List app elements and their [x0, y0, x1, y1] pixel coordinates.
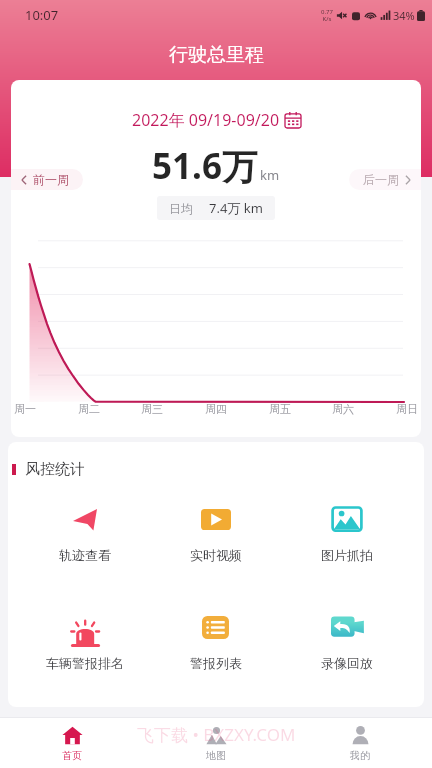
button[interactable]: 前一周: [11, 169, 83, 190]
staticText: 10:07: [25, 6, 59, 24]
staticText: 录像回放: [321, 655, 373, 671]
button[interactable]: 2022年 09/19-09/20: [126, 107, 307, 133]
staticText: 2022年 09/19-09/20: [132, 109, 280, 131]
staticText: 日均: [169, 201, 193, 216]
staticText: 周四: [205, 402, 227, 416]
staticText: 周六: [332, 402, 354, 416]
staticText: 图片抓拍: [321, 547, 373, 563]
staticText: 周日: [396, 402, 418, 416]
staticText: 周一: [14, 402, 36, 416]
staticText: 前一周: [33, 172, 69, 187]
staticText: 行驶总里程: [169, 43, 264, 67]
staticText: 车辆警报排名: [46, 655, 124, 671]
staticText: 首页: [62, 749, 82, 762]
staticText: 7.4万 km: [209, 199, 263, 217]
button[interactable]: 后一周: [349, 169, 421, 190]
staticText: 周三: [141, 402, 163, 416]
button[interactable]: 车辆警报排名: [20, 609, 150, 671]
staticText: 地图: [206, 749, 226, 762]
staticText: 实时视频: [190, 547, 242, 563]
button[interactable]: 警报列表: [150, 609, 281, 671]
staticText: km: [260, 166, 280, 184]
staticText: 我的: [350, 749, 370, 762]
button[interactable]: 录像回放: [281, 609, 412, 671]
staticText: 34%: [393, 8, 415, 23]
button[interactable]: 轨迹查看: [20, 503, 150, 563]
staticText: 51.6万: [152, 142, 257, 190]
staticText: 警报列表: [190, 655, 242, 671]
staticText: 周五: [269, 402, 291, 416]
staticText: 周二: [78, 402, 100, 416]
button[interactable]: Home: [0, 725, 144, 762]
staticText: 飞下载 • BXZXY.COM: [137, 723, 296, 746]
staticText: 轨迹查看: [59, 547, 111, 563]
button[interactable]: 图片抓拍: [281, 503, 412, 563]
button[interactable]: 实时视频: [150, 503, 281, 563]
staticText: 后一周: [363, 172, 399, 187]
button[interactable]: 日均: [157, 196, 275, 220]
staticText: 0.77 K/s: [321, 8, 333, 23]
button[interactable]: Profile: [288, 725, 432, 762]
button[interactable]: Map: [144, 725, 288, 762]
staticText: 风控统计: [25, 460, 85, 479]
